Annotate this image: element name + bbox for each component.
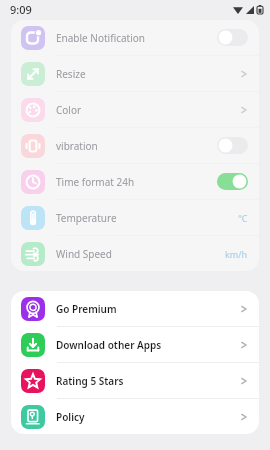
- button[interactable]: Download other Apps: [11, 327, 259, 362]
- other: Open: [240, 104, 248, 116]
- other: Open: [240, 375, 248, 387]
- staticText: Color: [56, 103, 82, 117]
- button[interactable]: Rating 5 Stars: [11, 363, 259, 398]
- staticText: 9:09: [10, 2, 32, 17]
- staticText: vibration: [56, 139, 98, 153]
- staticText: Policy: [56, 410, 85, 424]
- button[interactable]: Temperature: [11, 200, 259, 235]
- staticText: Resize: [56, 67, 86, 81]
- button[interactable]: Wind Speed: [11, 236, 259, 271]
- staticText: Go Premium: [56, 302, 117, 316]
- button[interactable]: Policy: [11, 399, 259, 434]
- other: Open: [240, 68, 248, 80]
- staticText: Rating 5 Stars: [56, 374, 124, 388]
- button[interactable]: Time format 24h: [11, 164, 259, 199]
- other: Toggle: [217, 29, 248, 46]
- other: Open: [240, 411, 248, 423]
- button[interactable]: Color: [11, 92, 259, 127]
- other: Toggle: [217, 137, 248, 154]
- staticText: Enable Notification: [56, 31, 146, 45]
- button[interactable]: Enable Notification: [11, 20, 259, 55]
- button[interactable]: Go Premium: [11, 291, 259, 326]
- staticText: Time format 24h: [56, 175, 135, 189]
- staticText: Temperature: [56, 211, 117, 225]
- other: Open: [240, 339, 248, 351]
- staticText: °C: [238, 212, 248, 224]
- button[interactable]: Resize: [11, 56, 259, 91]
- staticText: Wind Speed: [56, 247, 112, 261]
- button[interactable]: vibration: [11, 128, 259, 163]
- other: Toggle: [217, 173, 248, 190]
- other: Open: [240, 303, 248, 315]
- staticText: km/h: [225, 248, 248, 260]
- staticText: Download other Apps: [56, 338, 162, 352]
